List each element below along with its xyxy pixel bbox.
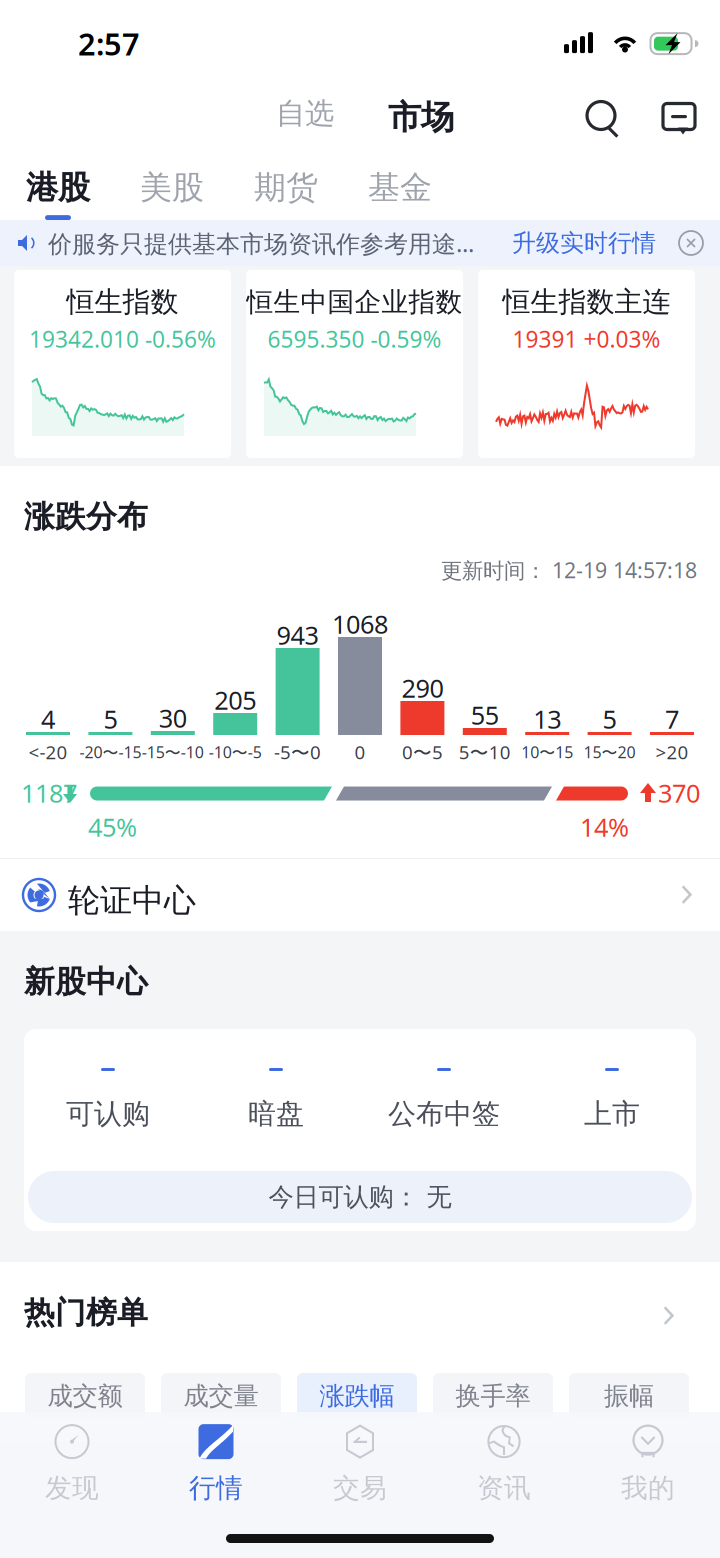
button[interactable]: 今日可认购： 无 xyxy=(28,1171,692,1223)
staticText: 升级实时行情 xyxy=(512,228,656,258)
button[interactable]: 发现 xyxy=(0,1422,144,1504)
button[interactable]: Dismiss notice xyxy=(678,230,704,256)
staticText: 资讯 xyxy=(477,1472,531,1504)
staticText: 公布中签 xyxy=(388,1097,500,1131)
staticText: 10〜15 xyxy=(521,741,573,763)
staticText: 5 xyxy=(103,702,117,736)
button[interactable]: 交易 xyxy=(288,1422,432,1504)
staticText: -5〜0 xyxy=(274,740,321,764)
button[interactable]: 市场 xyxy=(381,89,461,145)
staticText: 我的 xyxy=(621,1472,675,1504)
staticText: 30 xyxy=(159,701,187,735)
button[interactable]: 公布中签 xyxy=(360,1043,528,1139)
staticText: 290 xyxy=(401,671,443,705)
button[interactable]: 上市 xyxy=(528,1043,696,1139)
staticText: 2:57 xyxy=(78,23,140,64)
staticText: 1068 xyxy=(332,607,388,641)
staticText: 19342.010 -0.56% xyxy=(29,324,216,354)
staticText: 暗盘 xyxy=(248,1097,304,1131)
button[interactable]: 涨跌幅 xyxy=(297,1373,417,1419)
staticText: -15〜-10 xyxy=(142,741,204,763)
staticText: 成交量 xyxy=(183,1380,258,1411)
staticText: 热门榜单 xyxy=(24,1294,148,1332)
staticText: 更新时间： 12-19 14:57:18 xyxy=(441,556,697,584)
staticText: 期货 xyxy=(254,168,318,207)
staticText: -20〜-15 xyxy=(79,741,141,763)
button[interactable]: 恒生指数主连 xyxy=(480,270,697,458)
button[interactable]: 换手率 xyxy=(433,1373,553,1419)
staticText: 55 xyxy=(471,698,499,732)
staticText: 基金 xyxy=(368,168,432,207)
staticText: 成交额 xyxy=(47,1380,122,1411)
staticText: 45% xyxy=(88,810,137,844)
staticText: 美股 xyxy=(140,168,204,207)
staticText: -10〜-5 xyxy=(209,741,262,763)
button[interactable]: 升级实时行情 xyxy=(510,230,658,256)
staticText: 6595.350 -0.59% xyxy=(267,324,441,354)
staticText: 4 xyxy=(41,702,55,736)
staticText: >20 xyxy=(655,740,688,764)
button[interactable]: 美股 xyxy=(128,165,216,223)
staticText: <-20 xyxy=(28,740,67,764)
button[interactable]: 暗盘 xyxy=(192,1043,360,1139)
staticText: 15〜20 xyxy=(584,741,636,763)
button[interactable]: 行情 xyxy=(144,1422,288,1504)
staticText: 13 xyxy=(533,702,561,736)
staticText: 港股 xyxy=(26,168,90,207)
button[interactable]: 港股 xyxy=(14,165,102,223)
staticText: 14% xyxy=(580,810,629,844)
staticText: 可认购 xyxy=(66,1097,150,1131)
staticText: 交易 xyxy=(333,1472,387,1504)
button[interactable]: 基金 xyxy=(356,165,444,223)
staticText: 943 xyxy=(277,618,319,652)
staticText: 今日可认购： 无 xyxy=(268,1181,451,1212)
staticText: 205 xyxy=(214,683,256,717)
staticText: 7 xyxy=(665,702,679,736)
staticText: 0 xyxy=(354,740,365,764)
staticText: 上市 xyxy=(584,1097,640,1131)
button[interactable]: 期货 xyxy=(242,165,330,223)
button[interactable]: 自选 xyxy=(270,87,340,139)
button[interactable]: Search xyxy=(577,92,625,140)
button[interactable]: 轮证中心 xyxy=(0,859,720,931)
staticText: 轮证中心 xyxy=(68,881,196,920)
staticText: 自选 xyxy=(276,95,334,131)
staticText: 新股中心 xyxy=(24,963,148,1001)
staticText: 换手率 xyxy=(455,1380,530,1411)
staticText: 市场 xyxy=(388,97,454,138)
staticText: 370 xyxy=(658,776,700,810)
staticText: 恒生指数 xyxy=(66,285,178,319)
button[interactable]: Messages xyxy=(657,94,705,142)
button[interactable]: 成交额 xyxy=(25,1373,145,1419)
button[interactable]: 振幅 xyxy=(569,1373,689,1419)
button[interactable]: 恒生指数 xyxy=(16,270,233,458)
staticText: 发现 xyxy=(45,1472,99,1504)
button[interactable]: More hot lists xyxy=(660,1302,678,1330)
staticText: 0〜5 xyxy=(402,740,443,764)
staticText: 5〜10 xyxy=(459,740,511,764)
staticText: 5 xyxy=(603,702,617,736)
button[interactable]: 我的 xyxy=(576,1422,720,1504)
staticText: 恒生指数主连 xyxy=(502,285,670,319)
staticText: 恒生中国企业指数 xyxy=(246,286,462,318)
staticText: 19391 +0.03% xyxy=(512,324,660,354)
button[interactable]: 可认购 xyxy=(24,1043,192,1139)
staticText: 1187 xyxy=(21,776,77,810)
staticText: 价服务只提供基本市场资讯作参考用途。 xyxy=(48,227,478,259)
button[interactable]: 恒生中国企业指数 xyxy=(248,270,465,458)
staticText: 涨跌分布 xyxy=(24,498,148,536)
button[interactable]: 成交量 xyxy=(161,1373,281,1419)
staticText: 行情 xyxy=(189,1472,243,1504)
button[interactable]: 资讯 xyxy=(432,1422,576,1504)
staticText: 振幅 xyxy=(604,1380,654,1411)
staticText: 涨跌幅 xyxy=(319,1380,394,1411)
